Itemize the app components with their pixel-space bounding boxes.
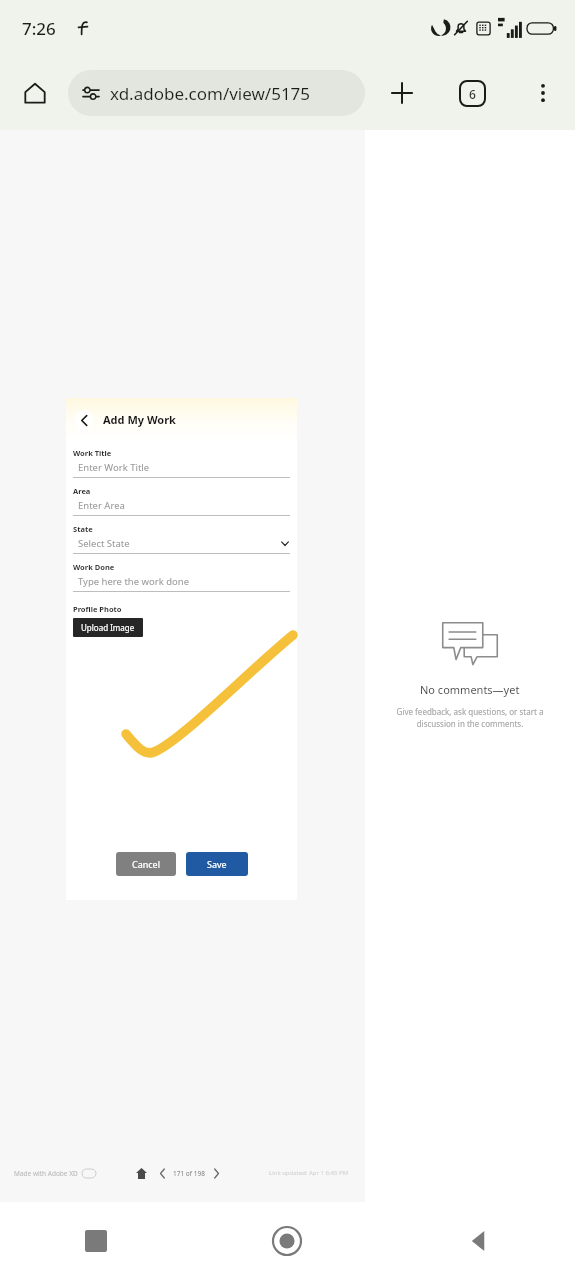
staticText: Give feedback, ask questions, or start a… xyxy=(390,706,550,730)
staticText: Work Title xyxy=(73,448,112,458)
button[interactable]: Tabs xyxy=(452,73,492,113)
button[interactable]: Cancel xyxy=(116,852,176,876)
staticText: State xyxy=(73,524,93,534)
button[interactable]: Home xyxy=(18,76,52,110)
staticText: Made with Adobe XD xyxy=(14,1169,78,1178)
staticText: Enter Area xyxy=(78,499,290,512)
staticText: xd.adobe.com/view/5175 xyxy=(110,82,311,105)
button[interactable]: Next xyxy=(208,1165,224,1181)
button[interactable]: Type here the work done xyxy=(73,575,290,588)
button[interactable]: New tab xyxy=(382,73,422,113)
button[interactable]: Made with Adobe XD xyxy=(14,1169,96,1178)
button[interactable]: Save xyxy=(186,852,248,876)
staticText: Select State xyxy=(78,537,281,550)
button[interactable]: Previous xyxy=(154,1165,170,1181)
button[interactable]: Home xyxy=(132,1164,150,1182)
staticText: 6 xyxy=(469,86,476,102)
staticText: No comments—yet xyxy=(420,682,520,697)
staticText: 171 of 198 xyxy=(173,1169,205,1178)
staticText: Area xyxy=(73,486,91,496)
staticText: Upload Image xyxy=(81,622,135,633)
button[interactable]: Enter Work Title xyxy=(73,461,290,474)
button[interactable]: Enter Area xyxy=(73,499,290,512)
staticText: Add My Work xyxy=(103,412,176,427)
staticText: 7:26 xyxy=(22,17,56,40)
button[interactable]: xd.adobe.com/view/5175 xyxy=(68,70,365,116)
staticText: Link updated: Apr 1 6:45 PM xyxy=(269,1169,349,1177)
staticText: Cancel xyxy=(132,858,161,870)
button[interactable]: Recent apps xyxy=(0,1202,191,1280)
button[interactable]: Back xyxy=(74,410,94,430)
staticText: Save xyxy=(207,858,227,870)
staticText: Enter Work Title xyxy=(78,461,290,474)
button[interactable]: More options xyxy=(523,73,563,113)
staticText: Work Done xyxy=(73,562,115,572)
button[interactable]: Upload Image xyxy=(73,618,143,637)
staticText: Type here the work done xyxy=(78,575,290,588)
button[interactable]: Home xyxy=(191,1202,383,1280)
button[interactable]: Select State xyxy=(73,537,290,550)
button[interactable]: Back xyxy=(383,1202,575,1280)
staticText: Profile Photo xyxy=(73,604,122,614)
